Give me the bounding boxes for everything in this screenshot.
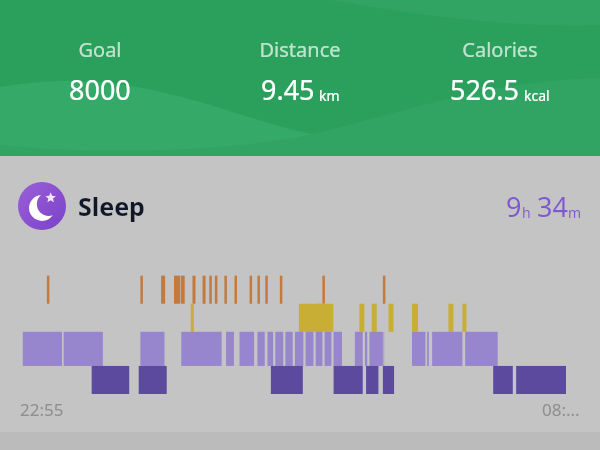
button[interactable]: Sleep bbox=[18, 182, 582, 230]
button[interactable]: Calories bbox=[400, 36, 600, 108]
staticText: m bbox=[568, 203, 582, 222]
button[interactable] bbox=[0, 272, 600, 394]
staticText: kcal bbox=[524, 86, 550, 105]
staticText: Sleep bbox=[78, 189, 145, 223]
button[interactable]: Goal bbox=[0, 36, 200, 108]
staticText: 8000 bbox=[69, 71, 131, 108]
staticText: 9.45 bbox=[261, 71, 315, 108]
staticText: 34 bbox=[537, 188, 568, 225]
staticText: 526.5 bbox=[450, 71, 520, 108]
staticText: Calories bbox=[462, 36, 538, 63]
staticText: 08:... bbox=[542, 398, 580, 421]
staticText: km bbox=[319, 86, 340, 105]
staticText: 9 bbox=[506, 188, 522, 225]
staticText: 22:55 bbox=[20, 398, 64, 421]
button[interactable]: Distance bbox=[200, 36, 400, 108]
other: Sleep bbox=[18, 182, 66, 230]
staticText: Goal bbox=[78, 36, 122, 63]
staticText: Distance bbox=[259, 36, 341, 63]
staticText: h bbox=[522, 203, 531, 222]
